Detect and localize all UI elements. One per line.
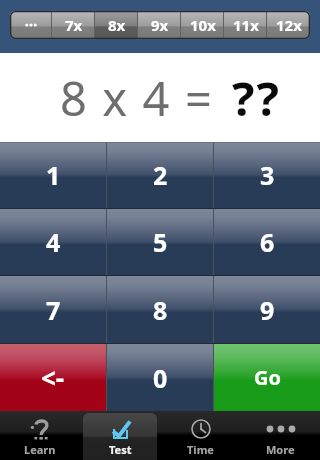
staticText: 0 <box>153 361 168 395</box>
staticText: Time <box>187 442 214 457</box>
staticText: 8 <box>153 293 168 327</box>
button[interactable]: 7x <box>52 11 95 39</box>
button[interactable]: Test <box>80 411 160 460</box>
button[interactable]: Go <box>214 344 320 411</box>
button[interactable]: 9x <box>138 11 181 39</box>
other: More <box>271 419 291 439</box>
button[interactable]: Learn <box>0 411 80 460</box>
staticText: 7 <box>46 293 61 327</box>
button[interactable]: Time <box>160 411 240 460</box>
button[interactable]: 12x <box>267 11 310 39</box>
button[interactable]: 11x <box>224 11 267 39</box>
button[interactable]: 8x <box>95 11 138 39</box>
staticText: 12x <box>276 15 302 35</box>
button[interactable]: 6 <box>214 209 320 275</box>
staticText: 9x <box>151 15 169 35</box>
staticText: 6 <box>260 225 275 259</box>
staticText: 3 <box>260 158 275 192</box>
staticText: <- <box>41 360 65 395</box>
staticText: More <box>266 442 295 457</box>
button[interactable]: <- <box>0 344 106 411</box>
staticText: Test <box>109 442 132 457</box>
other: Learn <box>30 419 50 439</box>
staticText: 8 x 4 = <box>60 66 214 130</box>
button[interactable]: 0 <box>107 344 213 411</box>
staticText: 10x <box>190 15 216 35</box>
button[interactable]: 4 <box>0 209 106 275</box>
button[interactable]: 9 <box>214 276 320 343</box>
button[interactable]: 7 <box>0 276 106 343</box>
button[interactable]: 2 <box>107 142 213 208</box>
button[interactable]: 10x <box>181 11 224 39</box>
staticText: 7x <box>65 15 83 35</box>
staticText: 5 <box>153 225 168 259</box>
button[interactable]: 5 <box>107 209 213 275</box>
staticText: Go <box>254 364 281 391</box>
button[interactable] <box>10 11 52 39</box>
staticText: 4 <box>46 225 61 259</box>
staticText: 1 <box>46 158 61 192</box>
staticText: ?? <box>232 66 281 130</box>
other: Test <box>111 419 131 439</box>
button[interactable]: 8 <box>107 276 213 343</box>
staticText: 2 <box>153 158 168 192</box>
staticText: Learn <box>24 442 56 457</box>
button[interactable]: 1 <box>0 142 106 208</box>
staticText: 11x <box>233 15 259 35</box>
staticText: 8x <box>108 15 126 35</box>
button[interactable]: 3 <box>214 142 320 208</box>
button[interactable]: More <box>240 411 320 460</box>
staticText: 9 <box>260 293 275 327</box>
other: Time <box>191 419 211 439</box>
